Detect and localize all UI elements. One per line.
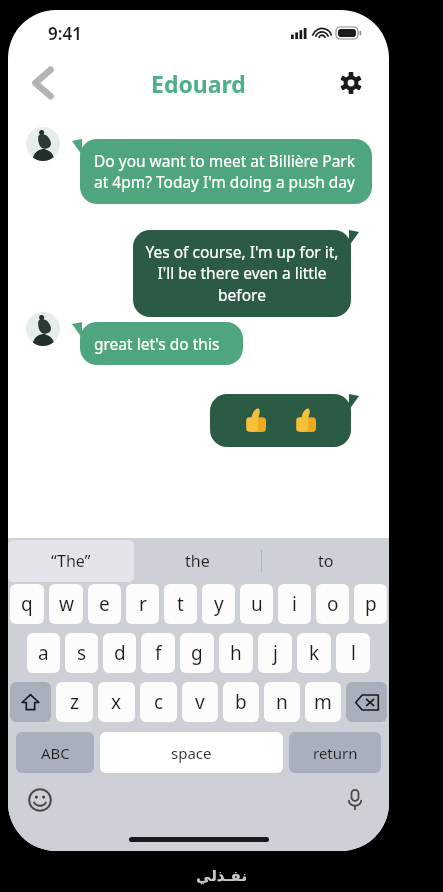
- button[interactable]: l: [336, 633, 370, 673]
- staticText: x: [111, 689, 122, 715]
- staticText: y: [214, 591, 224, 617]
- button[interactable]: s: [65, 633, 98, 673]
- staticText: a: [38, 640, 49, 666]
- staticText: n: [276, 689, 288, 715]
- staticText: b: [235, 689, 247, 715]
- button[interactable]: n: [264, 682, 300, 722]
- button[interactable]: b: [223, 682, 259, 722]
- staticText: c: [154, 689, 164, 715]
- button[interactable]: Yes of course, I'm up for it, I'll be th…: [133, 230, 359, 317]
- button[interactable]: “The”: [8, 540, 134, 582]
- staticText: f: [155, 640, 162, 666]
- button[interactable]: x: [98, 682, 135, 722]
- staticText: i: [292, 591, 297, 617]
- staticText: Yes of course, I'm up for it, I'll be th…: [145, 241, 339, 306]
- button[interactable]: r: [126, 584, 159, 624]
- button[interactable]: the: [134, 538, 261, 584]
- staticText: p: [365, 591, 377, 617]
- button[interactable]: d: [103, 633, 136, 673]
- button[interactable]: k: [297, 633, 331, 673]
- button[interactable]: Back: [20, 60, 66, 106]
- button[interactable]: q: [10, 584, 44, 624]
- button[interactable]: ABC: [16, 732, 94, 773]
- staticText: نفـذلي: [196, 867, 248, 884]
- staticText: k: [309, 640, 320, 666]
- staticText: great let's do this: [94, 333, 220, 354]
- button[interactable]: g: [180, 633, 214, 673]
- button[interactable]: Do you want to meet at Billière Park at …: [72, 139, 372, 204]
- button[interactable]: great let's do this: [72, 322, 243, 365]
- button[interactable]: p: [354, 584, 387, 624]
- button[interactable]: i: [278, 584, 311, 624]
- staticText: the: [185, 550, 210, 572]
- button[interactable]: j: [258, 633, 292, 673]
- staticText: space: [171, 743, 212, 763]
- button[interactable]: a: [27, 633, 60, 673]
- button[interactable]: c: [140, 682, 177, 722]
- button[interactable]: f: [141, 633, 175, 673]
- staticText: e: [99, 591, 110, 617]
- staticText: g: [191, 640, 203, 666]
- button[interactable]: m: [305, 682, 341, 722]
- staticText: u: [251, 591, 263, 617]
- button[interactable]: return: [289, 732, 381, 773]
- staticText: v: [195, 689, 205, 715]
- staticText: w: [59, 591, 74, 617]
- button[interactable]: Shift: [10, 682, 51, 722]
- button[interactable]: t: [164, 584, 197, 624]
- button[interactable]: z: [56, 682, 93, 722]
- staticText: o: [327, 591, 339, 617]
- staticText: ABC: [41, 743, 70, 763]
- button[interactable]: Backspace: [346, 682, 387, 722]
- staticText: s: [77, 640, 87, 666]
- staticText: j: [273, 640, 278, 666]
- staticText: “The”: [51, 550, 91, 572]
- staticText: Do you want to meet at Billière Park at …: [94, 150, 358, 193]
- button[interactable]: v: [182, 682, 218, 722]
- button[interactable]: y: [202, 584, 235, 624]
- button[interactable]: space: [100, 732, 283, 773]
- button[interactable]: w: [49, 584, 83, 624]
- button[interactable]: Settings: [329, 61, 373, 105]
- staticText: Edouard: [151, 68, 246, 99]
- button[interactable]: e: [88, 584, 121, 624]
- staticText: r: [139, 591, 147, 617]
- button[interactable]: to: [262, 538, 389, 584]
- staticText: q: [21, 591, 33, 617]
- button[interactable]: Dictation: [337, 782, 373, 818]
- button[interactable]: Emoji: [22, 782, 58, 818]
- staticText: to: [318, 550, 334, 572]
- staticText: m: [314, 689, 332, 715]
- staticText: d: [114, 640, 126, 666]
- staticText: return: [313, 743, 358, 763]
- button[interactable]: u: [240, 584, 273, 624]
- staticText: 9:41: [48, 22, 82, 45]
- button[interactable]: h: [219, 633, 253, 673]
- staticText: l: [351, 640, 356, 666]
- staticText: z: [70, 689, 79, 715]
- staticText: h: [230, 640, 242, 666]
- button[interactable]: [210, 394, 359, 447]
- button[interactable]: o: [316, 584, 349, 624]
- staticText: t: [177, 591, 184, 617]
